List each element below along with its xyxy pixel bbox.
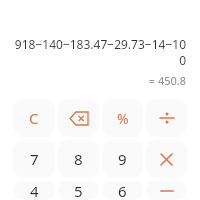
button[interactable]: Divide [146, 99, 187, 137]
button[interactable]: 7 [13, 140, 55, 178]
button[interactable]: 6 [102, 181, 143, 200]
staticText: 9 [118, 149, 127, 169]
staticText: 4 [30, 181, 39, 200]
button[interactable]: 4 [13, 181, 55, 200]
button[interactable]: 5 [58, 181, 99, 200]
button[interactable]: Multiply [146, 140, 187, 178]
staticText: 918−140−183.47−29.73−14−100 [14, 36, 186, 68]
staticText: 8 [74, 149, 83, 169]
staticText: % [117, 109, 129, 128]
staticText: C [29, 108, 39, 128]
button[interactable]: 8 [58, 140, 99, 178]
staticText: 6 [118, 181, 127, 200]
button[interactable]: Backspace [58, 99, 99, 137]
button[interactable]: Minus [146, 181, 187, 200]
staticText: 7 [30, 149, 39, 169]
button[interactable]: Clear [13, 99, 55, 137]
button[interactable]: 9 [102, 140, 143, 178]
staticText: = 450.8 [14, 73, 186, 88]
button[interactable]: Percent [102, 99, 143, 137]
staticText: 5 [74, 181, 83, 200]
